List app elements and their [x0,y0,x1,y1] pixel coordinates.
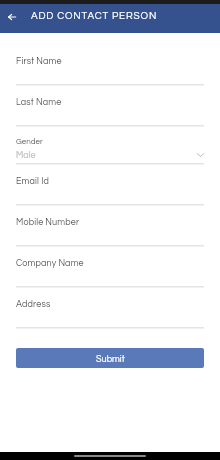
staticText: Company Name [16,259,84,268]
staticText: Submit [96,355,125,364]
staticText: Email Id [16,177,49,186]
staticText: Gender [16,137,43,145]
staticText: First Name [16,57,62,66]
button[interactable]: Submit [16,348,204,368]
staticText: Mobile Number [16,218,80,227]
button[interactable]: Gender [0,133,220,163]
staticText: Male [16,151,36,160]
button[interactable]: Address [0,297,220,327]
staticText: Last Name [16,98,62,107]
button[interactable]: First Name [0,54,220,84]
button[interactable]: Email Id [0,174,220,204]
staticText: ADD CONTACT PERSON [31,11,158,21]
button[interactable]: Mobile Number [0,215,220,245]
button[interactable]: Company Name [0,256,220,286]
button[interactable]: Last Name [0,95,220,125]
button[interactable]: Back [0,4,23,29]
staticText: Address [16,300,51,309]
